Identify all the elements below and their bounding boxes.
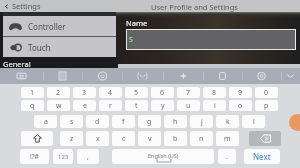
button[interactable]: Controller	[3, 16, 116, 36]
staticText: r	[109, 101, 112, 111]
staticText: z	[70, 134, 74, 144]
staticText: English (US)	[148, 152, 179, 159]
staticText: o	[238, 101, 243, 111]
button[interactable]: s	[60, 115, 83, 128]
button[interactable]: b	[164, 131, 187, 146]
staticText: Settings	[12, 1, 41, 11]
button[interactable]: d	[86, 115, 109, 128]
staticText: m	[224, 134, 231, 144]
staticText: ,	[87, 152, 89, 161]
button[interactable]: t	[125, 100, 148, 111]
staticText: c	[122, 134, 126, 144]
button[interactable]: i	[203, 100, 226, 111]
button[interactable]: Settings	[242, 68, 281, 84]
staticText: a	[44, 117, 48, 127]
staticText: f	[122, 117, 125, 127]
staticText: u	[186, 101, 191, 111]
staticText: d	[95, 117, 100, 127]
button[interactable]: f	[112, 115, 135, 128]
staticText: 123	[58, 153, 69, 161]
button[interactable]: 123	[53, 149, 73, 164]
staticText: 5	[134, 88, 139, 98]
staticText: s	[70, 117, 74, 127]
staticText: Controller	[28, 21, 66, 32]
staticText: 2	[56, 88, 61, 98]
staticText: .	[226, 152, 228, 161]
staticText: 4	[108, 88, 113, 98]
staticText: Name	[126, 18, 148, 28]
button[interactable]: 7	[177, 87, 200, 98]
button[interactable]: Next	[244, 149, 280, 164]
button[interactable]: Hide keyboard	[281, 68, 300, 84]
staticText: x	[96, 134, 100, 144]
staticText: !?#	[30, 152, 39, 161]
staticText: y	[161, 101, 165, 111]
button[interactable]: Text editing	[43, 68, 82, 84]
button[interactable]: c	[112, 131, 135, 146]
button[interactable]: Touch	[3, 37, 116, 57]
staticText: Next	[253, 151, 271, 162]
button[interactable]: Clipboard	[203, 68, 242, 84]
button[interactable]: v	[138, 131, 161, 146]
button[interactable]: k	[216, 115, 239, 128]
button[interactable]: Shift	[21, 131, 53, 146]
staticText: l	[253, 117, 255, 127]
button[interactable]: e	[73, 100, 96, 111]
staticText: User Profile and Settings	[151, 2, 238, 12]
button[interactable]: English (US)	[112, 149, 214, 164]
staticText: w	[56, 101, 62, 111]
button[interactable]: 4	[99, 87, 122, 98]
button[interactable]: Settings	[4, 0, 41, 12]
button[interactable]: ,	[77, 149, 99, 164]
staticText: 9	[238, 88, 243, 98]
button[interactable]: y	[151, 100, 174, 111]
button[interactable]: w	[47, 100, 70, 111]
button[interactable]: 2	[47, 87, 70, 98]
button[interactable]: l	[242, 115, 265, 128]
button[interactable]: Backspace	[249, 131, 281, 146]
staticText: 1	[30, 88, 35, 98]
staticText: q	[30, 101, 35, 111]
button[interactable]: !?#	[20, 149, 49, 164]
button[interactable]: m	[216, 131, 239, 146]
button[interactable]: Kaomoji	[122, 68, 163, 84]
button[interactable]: Move cursor	[163, 68, 203, 84]
button[interactable]: q	[21, 100, 44, 111]
button[interactable]: 3	[73, 87, 96, 98]
button[interactable]: 8	[203, 87, 226, 98]
button[interactable]: o	[229, 100, 252, 111]
button[interactable]: x	[86, 131, 109, 146]
button[interactable]: 0	[255, 87, 278, 98]
staticText: p	[264, 101, 269, 111]
staticText: g	[147, 117, 152, 127]
button[interactable]: n	[190, 131, 213, 146]
button[interactable]: g	[138, 115, 161, 128]
staticText: k	[226, 117, 230, 127]
staticText: s	[129, 33, 133, 44]
staticText: i	[214, 101, 216, 111]
staticText: 6	[160, 88, 165, 98]
button[interactable]: r	[99, 100, 122, 111]
button[interactable]: Emoji	[82, 68, 122, 84]
staticText: General	[3, 59, 31, 69]
button[interactable]: a	[34, 115, 57, 128]
button[interactable]: z	[60, 131, 83, 146]
staticText: e	[83, 101, 87, 111]
button[interactable]: .	[218, 149, 236, 164]
button[interactable]: 5	[125, 87, 148, 98]
staticText: 7	[186, 88, 191, 98]
button[interactable]: 1	[21, 87, 44, 98]
button[interactable]: Keyboard	[0, 68, 43, 84]
button[interactable]: h	[164, 115, 187, 128]
button[interactable]: j	[190, 115, 213, 128]
button[interactable]: 6	[151, 87, 174, 98]
button[interactable]: 9	[229, 87, 252, 98]
button[interactable]: u	[177, 100, 200, 111]
staticText: h	[173, 117, 178, 127]
staticText: 3	[82, 88, 87, 98]
staticText: v	[148, 134, 152, 144]
staticText: n	[199, 134, 204, 144]
button[interactable]: s	[127, 30, 295, 49]
staticText: Touch	[28, 42, 51, 53]
button[interactable]: p	[255, 100, 278, 111]
